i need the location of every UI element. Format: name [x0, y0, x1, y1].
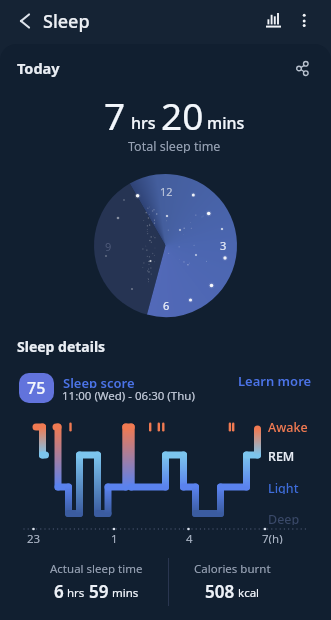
staticText: Awake [268, 419, 308, 433]
staticText: Sleep score [63, 374, 135, 388]
staticText: mins [207, 112, 245, 134]
staticText: 11:00 (Wed) - 06:30 (Thu) [62, 388, 195, 402]
staticText: 23 [27, 531, 41, 544]
staticText: 3 [220, 238, 227, 251]
staticText: Total sleep time [128, 138, 221, 153]
staticText: 7(h) [262, 531, 283, 544]
staticText: Today [17, 58, 60, 78]
button[interactable]: 6 [16, 580, 176, 602]
staticText: Learn more [238, 372, 312, 390]
button[interactable]: Learn more [231, 372, 312, 390]
staticText: kcal [238, 585, 260, 601]
staticText: 4 [186, 531, 193, 544]
staticText: mins [112, 585, 139, 601]
staticText: hrs [67, 585, 85, 601]
staticText: 7 [104, 90, 126, 140]
staticText: 9 [105, 239, 112, 252]
button[interactable] [12, 8, 38, 34]
staticText: 12 [160, 184, 173, 197]
staticText: hrs [131, 112, 156, 134]
staticText: 508 [205, 580, 235, 602]
staticText: Light [268, 480, 299, 494]
staticText: Sleep details [17, 337, 106, 356]
staticText: 6 [163, 298, 170, 311]
button[interactable]: 75 [19, 373, 54, 403]
staticText: Calories burnt [194, 561, 271, 575]
staticText: Actual sleep time [50, 561, 143, 575]
button[interactable] [292, 7, 317, 34]
staticText: 59 [89, 580, 109, 602]
button[interactable] [260, 7, 287, 34]
staticText: 20 [161, 90, 204, 140]
staticText: Deep [268, 511, 300, 525]
staticText: 75 [27, 377, 46, 399]
staticText: 6 [54, 580, 64, 602]
button[interactable] [291, 56, 316, 81]
button[interactable]: 508 [166, 580, 298, 602]
staticText: 1 [111, 531, 118, 544]
staticText: REM [268, 448, 295, 462]
staticText: Sleep [43, 9, 90, 34]
